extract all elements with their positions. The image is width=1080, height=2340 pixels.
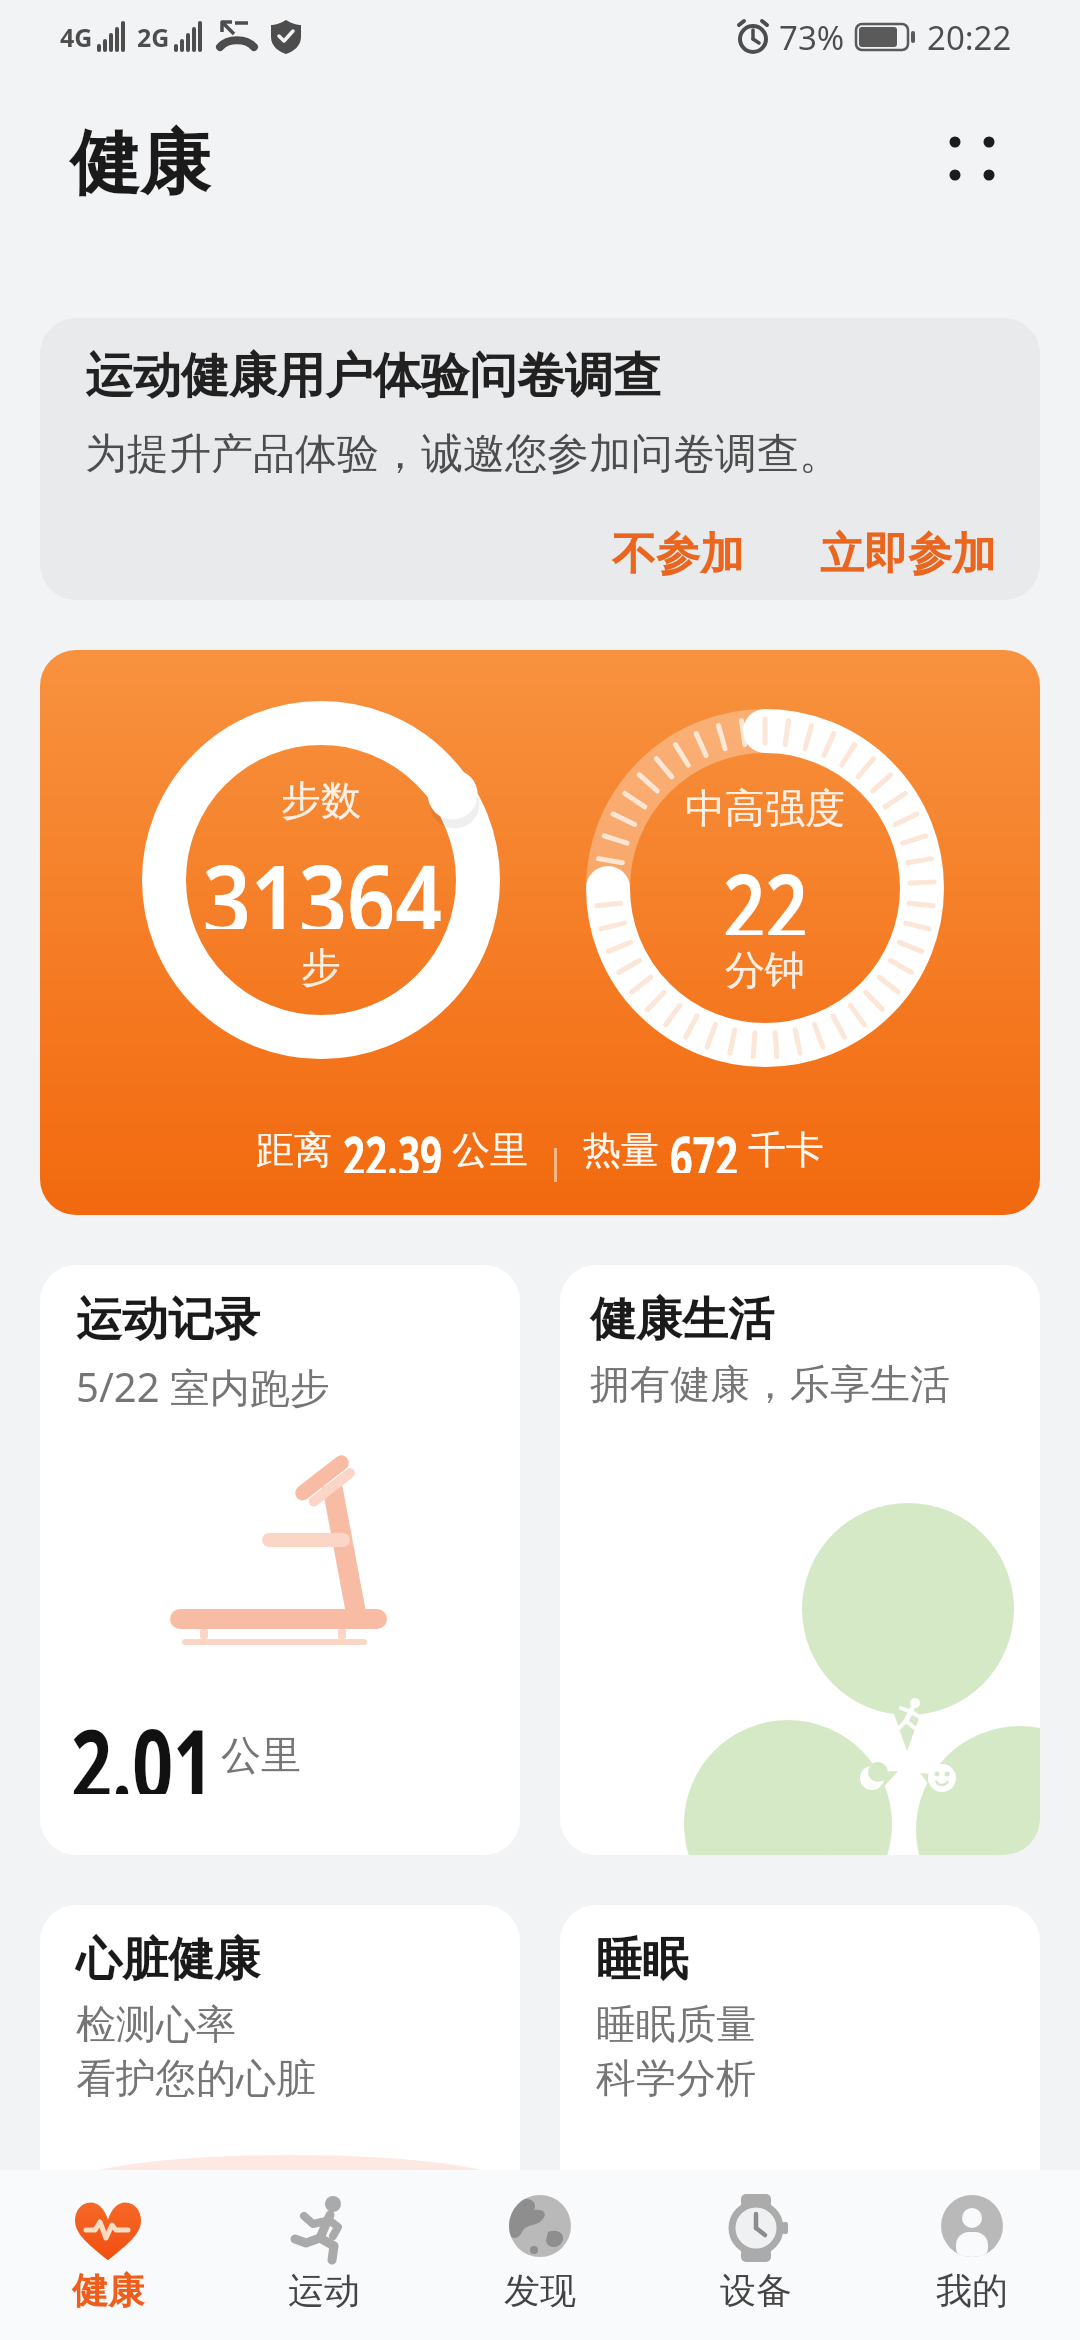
- staticText: 不参加: [612, 527, 744, 582]
- staticText: 22: [723, 842, 808, 935]
- staticText: 步: [301, 942, 341, 992]
- staticText: 拥有健康，乐享生活: [590, 1359, 950, 1409]
- staticText: 立即参加: [820, 527, 996, 582]
- button[interactable]: 心脏健康: [40, 1905, 520, 2340]
- button[interactable]: 我的: [864, 2194, 1080, 2340]
- staticText: 22.39: [343, 1118, 446, 1173]
- staticText: 公里: [452, 1126, 528, 1174]
- button[interactable]: 立即参加: [820, 527, 996, 582]
- staticText: 热量: [583, 1126, 659, 1174]
- staticText: 2G: [137, 20, 170, 54]
- staticText: 健康: [70, 120, 210, 208]
- button[interactable]: 步数: [40, 650, 1040, 1215]
- staticText: 2.01: [71, 1696, 207, 1794]
- button[interactable]: 睡眠: [560, 1905, 1040, 2340]
- staticText: 672: [670, 1118, 742, 1173]
- staticText: 睡眠: [596, 1931, 688, 1989]
- staticText: 健康: [72, 2268, 144, 2313]
- staticText: 发现: [504, 2268, 576, 2313]
- button[interactable]: 发现: [432, 2194, 648, 2340]
- staticText: 73%: [779, 15, 845, 60]
- button[interactable]: [938, 123, 1008, 183]
- staticText: 5/22 室内跑步: [76, 1359, 330, 1414]
- button[interactable]: 运动: [216, 2194, 432, 2340]
- staticText: 为提升产品体验，诚邀您参加问卷调查。: [85, 428, 841, 481]
- staticText: 距离: [256, 1126, 332, 1174]
- staticText: 睡眠质量: [596, 1999, 756, 2049]
- staticText: 检测心率: [76, 1999, 236, 2049]
- staticText: 中高强度: [685, 783, 845, 833]
- staticText: 运动健康用户体验问卷调查: [85, 346, 661, 406]
- staticText: 健康生活: [590, 1291, 774, 1349]
- staticText: 看护您的心脏: [76, 2053, 316, 2103]
- staticText: 31364: [202, 831, 441, 929]
- staticText: 20:22: [927, 15, 1012, 60]
- button[interactable]: 不参加: [612, 527, 744, 582]
- staticText: 科学分析: [596, 2053, 756, 2103]
- button[interactable]: 运动记录: [40, 1265, 520, 1855]
- button[interactable]: 健康生活: [560, 1265, 1040, 1855]
- staticText: 4G: [60, 20, 93, 54]
- staticText: 分钟: [725, 945, 805, 995]
- staticText: 心脏健康: [76, 1931, 260, 1989]
- staticText: 千卡: [748, 1126, 824, 1174]
- staticText: 步数: [281, 775, 361, 825]
- staticText: 我的: [936, 2268, 1008, 2313]
- staticText: 运动: [288, 2268, 360, 2313]
- staticText: 设备: [720, 2268, 792, 2313]
- button[interactable]: 健康: [0, 2194, 216, 2340]
- staticText: 公里: [221, 1730, 301, 1780]
- button[interactable]: 设备: [648, 2194, 864, 2340]
- staticText: 运动记录: [76, 1291, 260, 1349]
